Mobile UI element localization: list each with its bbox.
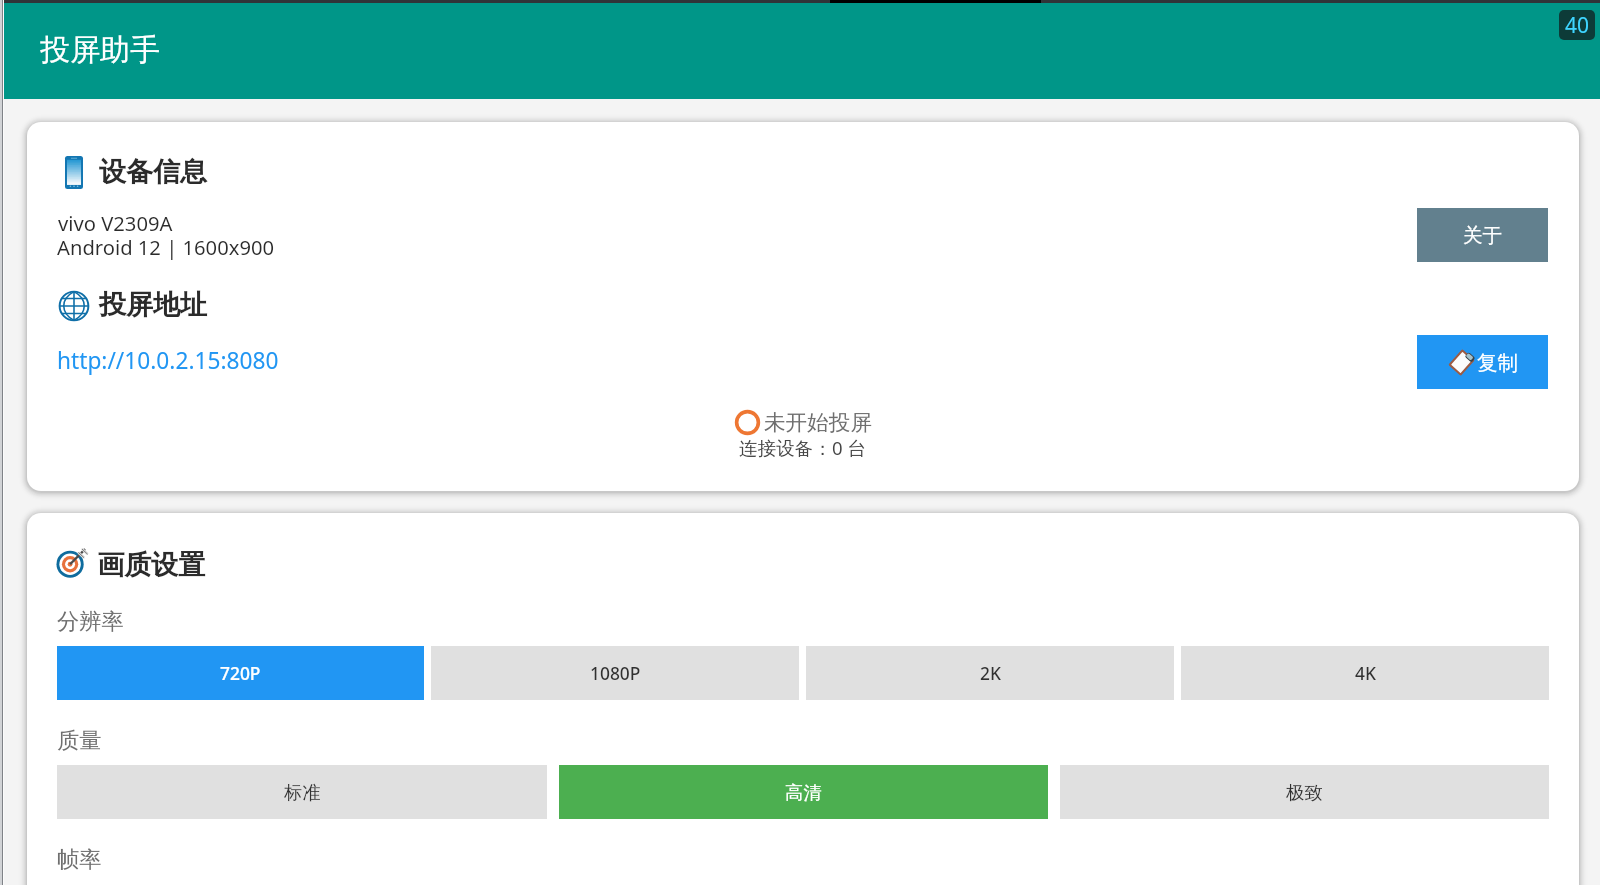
button[interactable]: http://10.0.2.15:8080 bbox=[57, 345, 279, 376]
staticText: 投屏助手 bbox=[40, 31, 160, 69]
staticText: 关于 bbox=[1463, 223, 1502, 248]
staticText: 720P bbox=[220, 661, 261, 685]
staticText: 质量 bbox=[57, 727, 102, 755]
button[interactable]: 720P bbox=[57, 646, 424, 700]
staticText: 帧率 bbox=[57, 846, 102, 874]
staticText: 分辨率 bbox=[57, 608, 124, 636]
staticText: 标准 bbox=[284, 781, 321, 804]
button[interactable]: 关于 bbox=[1417, 208, 1548, 262]
staticText: 40 bbox=[1565, 11, 1590, 40]
button[interactable]: 2K bbox=[806, 646, 1174, 700]
button[interactable]: 1080P bbox=[431, 646, 799, 700]
staticText: 1080P bbox=[590, 661, 641, 685]
button[interactable]: 4K bbox=[1181, 646, 1549, 700]
staticText: 未开始投屏 bbox=[764, 409, 872, 436]
staticText: http://10.0.2.15:8080 bbox=[57, 345, 279, 376]
staticText: 4K bbox=[1355, 661, 1376, 685]
staticText: 设备信息 bbox=[99, 155, 207, 189]
staticText: 投屏地址 bbox=[99, 288, 207, 322]
staticText: 高清 bbox=[785, 781, 822, 804]
staticText: 2K bbox=[980, 661, 1001, 685]
button[interactable]: 复制 bbox=[1417, 335, 1548, 389]
staticText: vivo V2309A bbox=[58, 209, 173, 237]
button[interactable]: 极致 bbox=[1060, 765, 1549, 819]
staticText: 复制 bbox=[1477, 350, 1518, 376]
button[interactable]: 高清 bbox=[559, 765, 1048, 819]
staticText: 极致 bbox=[1286, 781, 1323, 804]
button[interactable]: 标准 bbox=[57, 765, 547, 819]
staticText: Android 12 | 1600x900 bbox=[57, 233, 275, 261]
staticText: 连接设备：0 台 bbox=[739, 435, 867, 460]
button[interactable]: FPS counter bbox=[1559, 10, 1595, 40]
staticText: 画质设置 bbox=[97, 548, 205, 582]
